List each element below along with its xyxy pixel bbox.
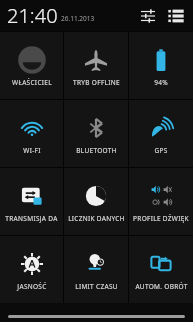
staticText: TRYB OFFLINE [73, 78, 120, 87]
staticText: JASNOŚĆ [17, 282, 47, 291]
staticText: WI-FI [23, 146, 41, 155]
button[interactable]: 94% [129, 32, 193, 99]
button[interactable]: WI-FI [0, 100, 63, 167]
button[interactable]: BLUETOOTH [64, 100, 128, 167]
staticText: LIMIT CZASU [75, 282, 118, 291]
button[interactable]: AUTOM. OBRÓT [129, 236, 193, 303]
button[interactable]: TRANSMISJA DA [0, 168, 63, 235]
button[interactable]: Settings sliders [137, 5, 159, 27]
button[interactable]: TRYB OFFLINE [64, 32, 128, 99]
button[interactable]: GPS [129, 100, 193, 167]
staticText: 21:40 [7, 2, 58, 29]
button[interactable]: PROFILE DŹWIĘK [129, 168, 193, 235]
button[interactable]: LICZNIK DANYCH [64, 168, 128, 235]
button[interactable]: WŁAŚCICIEL [0, 32, 63, 99]
staticText: TRANSMISJA DA [5, 214, 58, 223]
staticText: LICZNIK DANYCH [68, 214, 125, 223]
staticText: PROFILE DŹWIĘK [133, 214, 189, 223]
button[interactable]: List view [165, 5, 187, 27]
staticText: BLUETOOTH [76, 146, 117, 155]
staticText: GPS [154, 146, 168, 155]
button[interactable]: LIMIT CZASU [64, 236, 128, 303]
button[interactable]: JASNOŚĆ [0, 236, 63, 303]
staticText: AUTOM. OBRÓT [135, 282, 188, 291]
staticText: 26.11.2013 [61, 14, 95, 23]
staticText: 94% [154, 78, 168, 87]
staticText: WŁAŚCICIEL [12, 78, 52, 87]
